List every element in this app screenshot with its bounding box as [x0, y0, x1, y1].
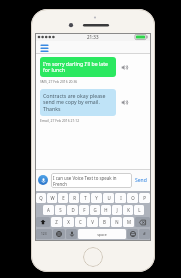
- button[interactable]: K: [123, 205, 133, 215]
- button[interactable]: Emoji: [127, 229, 138, 239]
- staticText: T: [84, 195, 87, 201]
- button[interactable]: V: [87, 217, 98, 227]
- button[interactable]: Backspace: [135, 217, 150, 227]
- button[interactable]: Play message audio: [120, 98, 129, 107]
- button[interactable]: M: [123, 217, 134, 227]
- staticText: X: [67, 219, 70, 225]
- staticText: W: [50, 195, 55, 201]
- button[interactable]: Z: [51, 217, 62, 227]
- staticText: 123: [41, 232, 47, 236]
- button[interactable]: O: [127, 193, 138, 203]
- staticText: SMS, 27 Feb 2016 20:36: [40, 79, 78, 84]
- button[interactable]: Voice input: [38, 175, 48, 185]
- staticText: B: [103, 219, 106, 225]
- button[interactable]: I'm sorry darling I'll be late for lunch: [40, 57, 116, 77]
- staticText: Q: [39, 195, 43, 201]
- staticText: I'm sorry darling I'll be late for lunch: [43, 60, 108, 74]
- button[interactable]: Send: [134, 175, 148, 186]
- button[interactable]: L: [134, 205, 144, 215]
- staticText: V: [91, 219, 94, 225]
- button[interactable]: Play message audio: [120, 63, 129, 72]
- button[interactable]: S: [55, 205, 66, 215]
- staticText: Z: [55, 219, 58, 225]
- staticText: Email, 27 Feb 2016 21:12: [40, 118, 80, 123]
- button[interactable]: E: [58, 193, 68, 203]
- button[interactable]: G: [90, 205, 100, 215]
- staticText: H: [104, 207, 108, 213]
- button[interactable]: T: [80, 193, 90, 203]
- button[interactable]: A: [43, 205, 54, 215]
- button[interactable]: Numbers: [36, 229, 52, 239]
- button[interactable]: Home: [83, 247, 103, 267]
- button[interactable]: X: [63, 217, 74, 227]
- staticText: Y: [95, 195, 98, 201]
- button[interactable]: Language: [53, 229, 65, 239]
- staticText: 21:33: [87, 34, 99, 40]
- staticText: #: [143, 231, 146, 237]
- button[interactable]: U: [103, 193, 114, 203]
- staticText: space: [97, 232, 107, 237]
- staticText: F: [83, 207, 86, 213]
- staticText: Contracts are okay please send me copy b…: [43, 92, 106, 113]
- button[interactable]: Contracts are okay please send me copy b…: [40, 89, 116, 116]
- button[interactable]: Y: [91, 193, 102, 203]
- staticText: K: [127, 207, 130, 213]
- button[interactable]: Menu: [39, 42, 50, 53]
- staticText: L: [138, 207, 141, 213]
- staticText: G: [93, 207, 97, 213]
- staticText: E: [62, 195, 65, 201]
- staticText: N: [115, 219, 119, 225]
- staticText: R: [73, 195, 76, 201]
- button[interactable]: J: [112, 205, 122, 215]
- button[interactable]: H: [101, 205, 111, 215]
- staticText: S: [59, 207, 62, 213]
- staticText: D: [71, 207, 75, 213]
- staticText: I can use Voice Text to speak in French: [53, 175, 117, 186]
- staticText: I: [120, 195, 122, 201]
- button[interactable]: Shift: [36, 217, 50, 227]
- button[interactable]: N: [111, 217, 122, 227]
- button[interactable]: I can use Voice Text to speak in French: [51, 173, 132, 188]
- button[interactable]: Q: [36, 193, 46, 203]
- staticText: J: [116, 207, 118, 213]
- button[interactable]: C: [75, 217, 86, 227]
- staticText: Send: [135, 177, 147, 184]
- staticText: C: [79, 219, 82, 225]
- staticText: U: [107, 195, 111, 201]
- button[interactable]: W: [47, 193, 57, 203]
- button[interactable]: space: [78, 229, 126, 239]
- staticText: O: [131, 195, 135, 201]
- staticText: A: [47, 207, 50, 213]
- button[interactable]: I: [115, 193, 126, 203]
- staticText: P: [143, 195, 146, 201]
- button[interactable]: R: [69, 193, 79, 203]
- button[interactable]: Dictation: [66, 229, 77, 239]
- button[interactable]: P: [139, 193, 150, 203]
- staticText: M: [127, 219, 131, 225]
- button[interactable]: B: [99, 217, 110, 227]
- button[interactable]: F: [79, 205, 89, 215]
- button[interactable]: D: [67, 205, 78, 215]
- button[interactable]: Symbols: [139, 229, 150, 239]
